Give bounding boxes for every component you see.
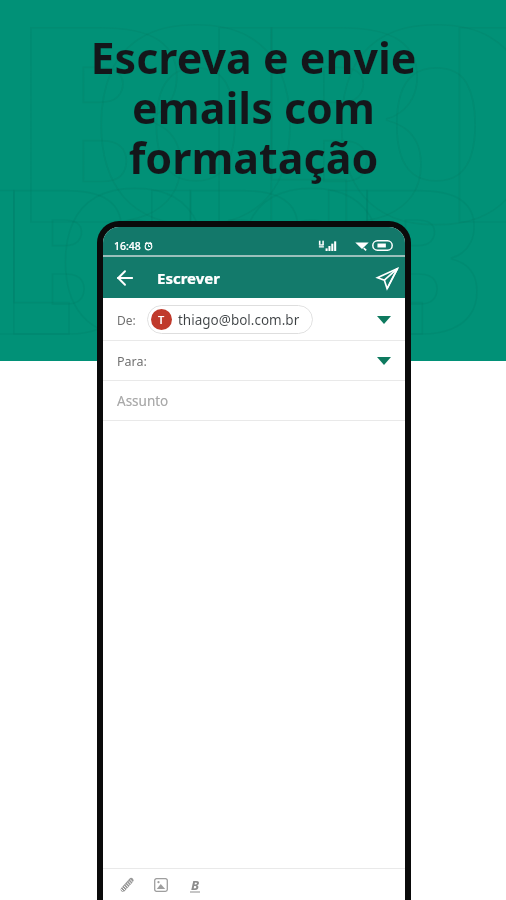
staticText: 16:48 bbox=[114, 239, 141, 253]
staticText: Escreva e envie emails com formatação bbox=[90, 28, 417, 187]
button[interactable]: Assunto bbox=[103, 381, 405, 421]
button[interactable]: De: bbox=[103, 298, 405, 341]
button[interactable]: Voltar bbox=[109, 262, 141, 294]
button[interactable]: Imagem bbox=[148, 872, 174, 898]
staticText: BOLBOLBOL bbox=[10, 0, 506, 292]
button[interactable]: Enviar bbox=[371, 262, 403, 294]
staticText: Assunto bbox=[117, 392, 169, 410]
button[interactable]: Anexar bbox=[114, 872, 140, 898]
staticText: Para: bbox=[117, 353, 147, 370]
staticText: T bbox=[158, 312, 165, 327]
staticText: De: bbox=[117, 312, 136, 328]
button[interactable]: Para: bbox=[103, 341, 405, 381]
button[interactable]: Negrito bbox=[182, 872, 208, 898]
staticText: Escrever bbox=[157, 268, 220, 288]
staticText: LBOLBOLB bbox=[0, 120, 409, 361]
staticText: thiago@bol.com.br bbox=[178, 311, 300, 329]
staticText: B bbox=[191, 876, 200, 894]
